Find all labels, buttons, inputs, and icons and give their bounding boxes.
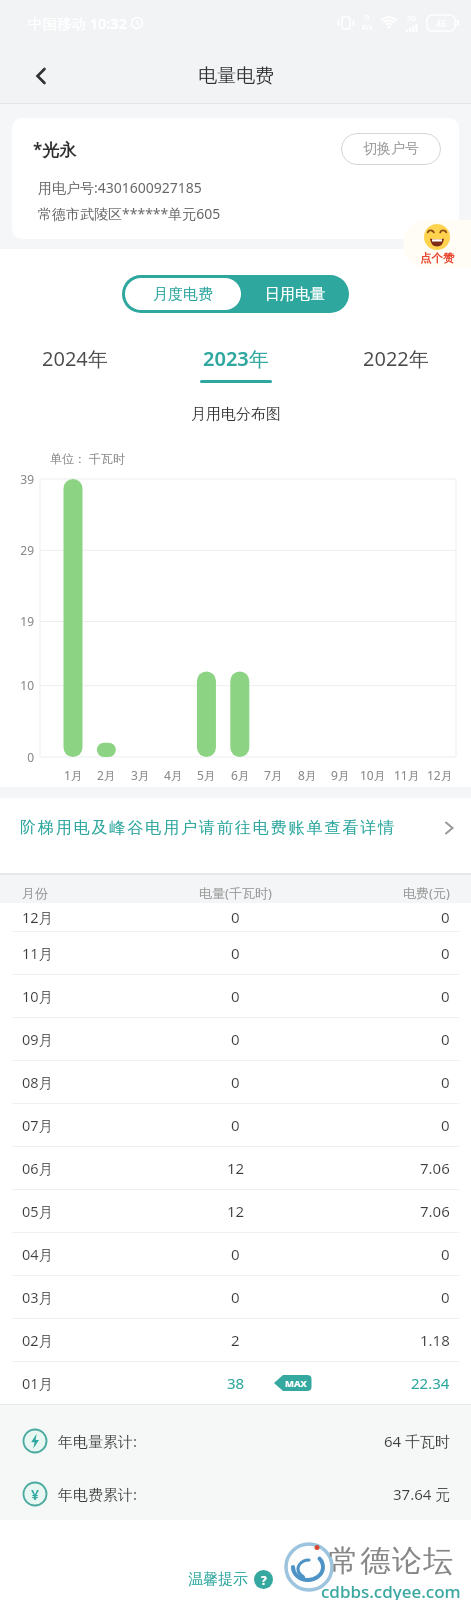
staticText: 9月 [331, 767, 350, 783]
staticText: *光永 [33, 138, 77, 161]
staticText: 10 [4, 677, 34, 693]
staticText: 常德市武陵区******单元605 [38, 204, 221, 223]
staticText: 06月 [22, 1158, 54, 1178]
staticText: 29 [4, 542, 34, 558]
button[interactable]: 2023年 [196, 341, 276, 387]
staticText: MAX [285, 1377, 307, 1390]
staticText: 2024年 [42, 345, 108, 372]
staticText: 04月 [22, 1244, 54, 1264]
staticText: 64 千瓦时 [384, 1431, 451, 1451]
button[interactable]: 2024年 [38, 341, 112, 376]
staticText: 切换户号 [363, 140, 419, 158]
staticText: 月份 [22, 885, 48, 901]
staticText: 0 [441, 1287, 450, 1307]
staticText: 0 [4, 749, 34, 765]
staticText: 用电户号:4301600927185 [38, 178, 202, 197]
button[interactable]: 2022年 [359, 341, 433, 376]
button[interactable]: 日用电量 [241, 275, 349, 313]
staticText: 2022年 [363, 345, 429, 372]
staticText: cdbbs.cdyee.com [321, 1580, 461, 1600]
staticText: 4月 [164, 767, 183, 783]
staticText: 02月 [22, 1330, 54, 1350]
staticText: 0 [441, 907, 450, 927]
staticText: 点个赞 [420, 251, 455, 265]
staticText: 0 [231, 986, 240, 1006]
staticText: 阶梯用电及峰谷电用户请前往电费账单查看详情 [20, 818, 396, 838]
staticText: 5G [407, 14, 417, 24]
staticText: 2023年 [203, 345, 269, 372]
staticText: 0 [231, 907, 240, 927]
staticText: 01月 [22, 1373, 54, 1393]
staticText: 10月 [22, 986, 54, 1006]
staticText: 09月 [22, 1029, 54, 1049]
staticText: 37.64 元 [393, 1484, 451, 1504]
button[interactable]: 温馨提示 [188, 1570, 248, 1589]
staticText: 6月 [231, 767, 250, 783]
staticText: 日用电量 [265, 285, 325, 304]
staticText: 07月 [22, 1115, 54, 1135]
staticText: 8月 [298, 767, 317, 783]
staticText: 月度电费 [153, 285, 213, 304]
staticText: 39 [4, 471, 34, 487]
staticText: 单位： 千瓦时 [50, 450, 126, 466]
staticText: 7月 [264, 767, 283, 783]
staticText: 0 [231, 943, 240, 963]
staticText: 11月 [22, 943, 54, 963]
button[interactable]: 切换户号 [341, 133, 441, 165]
staticText: 1月 [64, 767, 83, 783]
staticText: 0 [441, 986, 450, 1006]
button[interactable]: 月度电费 [125, 278, 241, 310]
staticText: 0 [441, 1072, 450, 1092]
staticText: 0 [441, 1115, 450, 1135]
staticText: 12月 [427, 767, 453, 783]
staticText: 1.18 [420, 1330, 450, 1350]
staticText: 05月 [22, 1201, 54, 1221]
staticText: 12月 [22, 907, 54, 927]
staticText: 2 [231, 1330, 240, 1350]
staticText: 常德论坛 [328, 1542, 454, 1580]
staticText: 3月 [131, 767, 150, 783]
staticText: ¥ [31, 1485, 40, 1504]
staticText: 08月 [22, 1072, 54, 1092]
staticText: 0 [231, 1115, 240, 1135]
staticText: 38 [227, 1373, 245, 1393]
staticText: 0 [365, 13, 370, 23]
staticText: 0 [441, 943, 450, 963]
staticText: 月用电分布图 [191, 405, 281, 424]
staticText: 电量(千瓦时) [199, 884, 272, 902]
staticText: K/s [362, 23, 373, 33]
staticText: 03月 [22, 1287, 54, 1307]
staticText: 0 [231, 1287, 240, 1307]
staticText: 12 [227, 1201, 245, 1221]
staticText: 2月 [97, 767, 116, 783]
staticText: 12 [227, 1158, 245, 1178]
button[interactable] [24, 58, 60, 94]
staticText: 0 [441, 1244, 450, 1264]
staticText: 年电量累计: [58, 1431, 138, 1451]
staticText: 46 [436, 17, 447, 29]
staticText: 电费(元) [403, 884, 450, 902]
staticText: 年电费累计: [58, 1484, 138, 1504]
button[interactable]: 阶梯用电及峰谷电用户请前往电费账单查看详情 [0, 798, 471, 858]
staticText: 5月 [197, 767, 216, 783]
staticText: 0 [231, 1072, 240, 1092]
staticText: 19 [4, 613, 34, 629]
staticText: 中国移动 10:32 [28, 13, 127, 33]
staticText: 7.06 [420, 1201, 450, 1221]
staticText: 0 [231, 1029, 240, 1049]
button[interactable]: 点个赞 [403, 220, 471, 268]
staticText: 0 [441, 1029, 450, 1049]
staticText: 10月 [360, 767, 386, 783]
staticText: 温馨提示 [188, 1570, 248, 1589]
staticText: 11月 [394, 767, 420, 783]
staticText: 0 [231, 1244, 240, 1264]
staticText: 22.34 [411, 1373, 450, 1393]
staticText: ? [261, 1572, 267, 1588]
staticText: 7.06 [420, 1158, 450, 1178]
staticText: 电量电费 [198, 64, 274, 88]
